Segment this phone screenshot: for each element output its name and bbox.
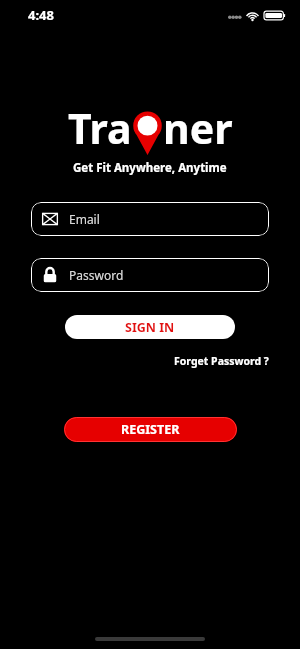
staticText: Email bbox=[69, 211, 100, 227]
staticText: SIGN IN bbox=[125, 319, 175, 336]
button[interactable]: SIGN IN bbox=[65, 315, 235, 339]
button[interactable]: Forget Password ? bbox=[174, 352, 300, 370]
button[interactable]: Password bbox=[31, 258, 269, 292]
staticText: Password bbox=[69, 267, 124, 283]
staticText: ner bbox=[163, 100, 233, 156]
staticText: Forget Password ? bbox=[174, 354, 269, 368]
staticText: Get Fit Anywhere, Anytime bbox=[73, 160, 227, 176]
staticText: Tra bbox=[68, 100, 132, 156]
button[interactable]: Email bbox=[31, 202, 269, 236]
button[interactable]: REGISTER bbox=[64, 417, 237, 442]
staticText: REGISTER bbox=[121, 421, 180, 438]
staticText: 4:48 bbox=[28, 6, 54, 24]
